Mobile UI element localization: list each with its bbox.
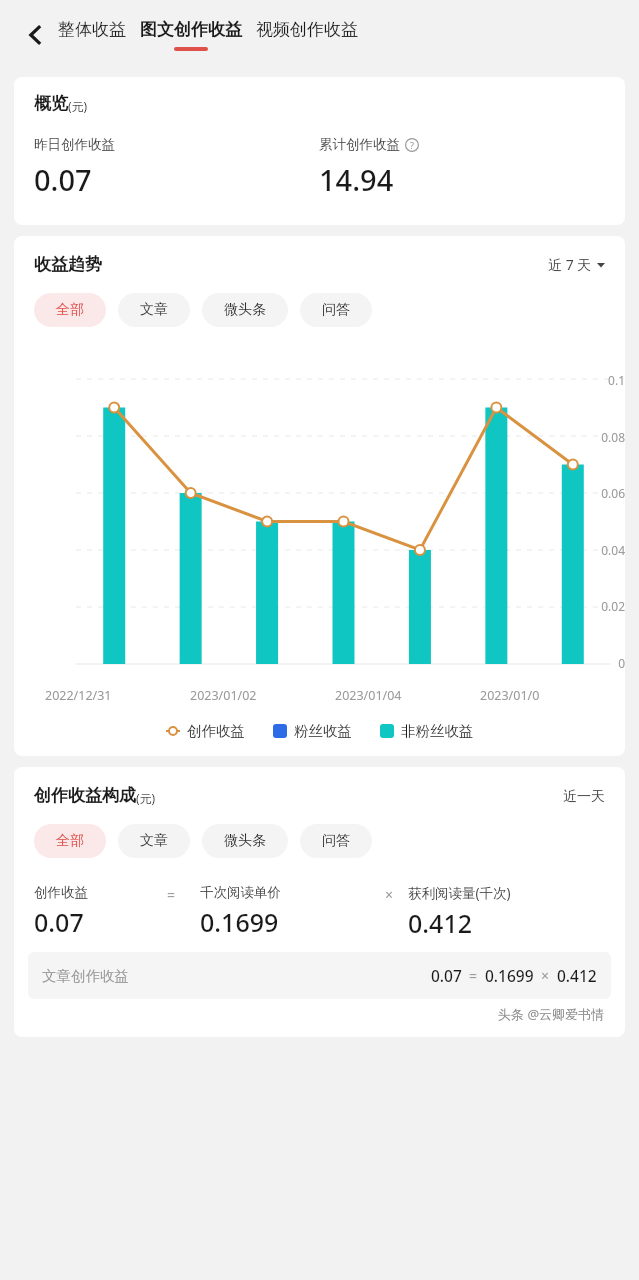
staticText: 昨日创作收益 [34, 136, 115, 153]
staticText: 图文创作收益 [140, 19, 242, 40]
staticText: 千次阅读单价 [200, 884, 281, 901]
staticText: 微头条 [224, 301, 266, 319]
staticText: 2022/12/31 [45, 687, 112, 704]
staticText: 创作收益构成 [34, 785, 136, 806]
staticText: (元) [68, 98, 88, 114]
button[interactable]: 创作收益 [166, 722, 245, 740]
button[interactable]: 全部 [34, 824, 106, 858]
button[interactable]: 整体收益 [58, 19, 126, 51]
staticText: 获利阅读量(千次) [408, 884, 511, 902]
staticText: 视频创作收益 [256, 19, 358, 40]
staticText: 0.1699 [485, 965, 534, 986]
button[interactable]: 图文创作收益 [140, 19, 242, 51]
staticText: 累计创作收益 [319, 136, 400, 153]
staticText: 0.07 [34, 905, 84, 939]
staticText: 非粉丝收益 [401, 722, 474, 740]
button[interactable]: 近 7 天 [548, 255, 605, 274]
staticText: 文章 [140, 301, 168, 319]
staticText: 全部 [56, 832, 84, 850]
staticText: 0.07 [431, 965, 462, 986]
button[interactable]: 问答 [300, 824, 372, 858]
button[interactable]: 问答 [300, 293, 372, 327]
staticText: 0.1699 [200, 905, 279, 939]
staticText: 近一天 [563, 788, 605, 806]
staticText: 文章创作收益 [42, 967, 129, 985]
staticText: 14.94 [319, 160, 394, 199]
staticText: 文章 [140, 832, 168, 850]
button[interactable]: 视频创作收益 [256, 19, 358, 51]
button[interactable]: Back [14, 13, 58, 57]
staticText: 头条 @云卿爱书情 [498, 1005, 605, 1023]
button[interactable]: 粉丝收益 [273, 722, 352, 740]
staticText: × [385, 885, 394, 904]
staticText: 2023/01/0 [480, 687, 540, 704]
staticText: 收益趋势 [34, 254, 102, 275]
staticText: 整体收益 [58, 19, 126, 40]
staticText: 问答 [322, 301, 350, 319]
staticText: 0.07 [34, 160, 92, 199]
staticText: 2023/01/02 [190, 687, 257, 704]
button[interactable]: 近一天 [563, 788, 605, 806]
staticText: × [541, 966, 550, 985]
staticText: 0.02 [601, 598, 625, 614]
staticText: 0.412 [557, 965, 597, 986]
staticText: 0.1 [608, 372, 625, 388]
button[interactable]: 非粉丝收益 [380, 722, 474, 740]
button[interactable]: 全部 [34, 293, 106, 327]
staticText: 创作收益 [187, 722, 245, 740]
staticText: = [469, 966, 478, 985]
staticText: 粉丝收益 [294, 722, 352, 740]
staticText: 0 [618, 655, 625, 671]
staticText: 0.06 [601, 485, 625, 501]
staticText: 创作收益 [34, 884, 88, 901]
button[interactable]: 文章创作收益 [28, 952, 611, 999]
button[interactable]: Info about cumulative earnings [405, 138, 419, 152]
staticText: 0.412 [408, 906, 473, 940]
button[interactable]: 文章 [118, 824, 190, 858]
staticText: 微头条 [224, 832, 266, 850]
button[interactable]: 微头条 [202, 824, 288, 858]
staticText: ? [410, 139, 414, 151]
staticText: 0.04 [601, 542, 625, 558]
staticText: = [167, 885, 176, 904]
button[interactable]: 文章 [118, 293, 190, 327]
staticText: 全部 [56, 301, 84, 319]
staticText: 近 7 天 [548, 255, 592, 274]
staticText: 2023/01/04 [335, 687, 402, 704]
staticText: 0.08 [601, 429, 625, 445]
staticText: 问答 [322, 832, 350, 850]
staticText: 概览 [34, 93, 68, 114]
staticText: (元) [136, 790, 156, 806]
button[interactable]: 微头条 [202, 293, 288, 327]
